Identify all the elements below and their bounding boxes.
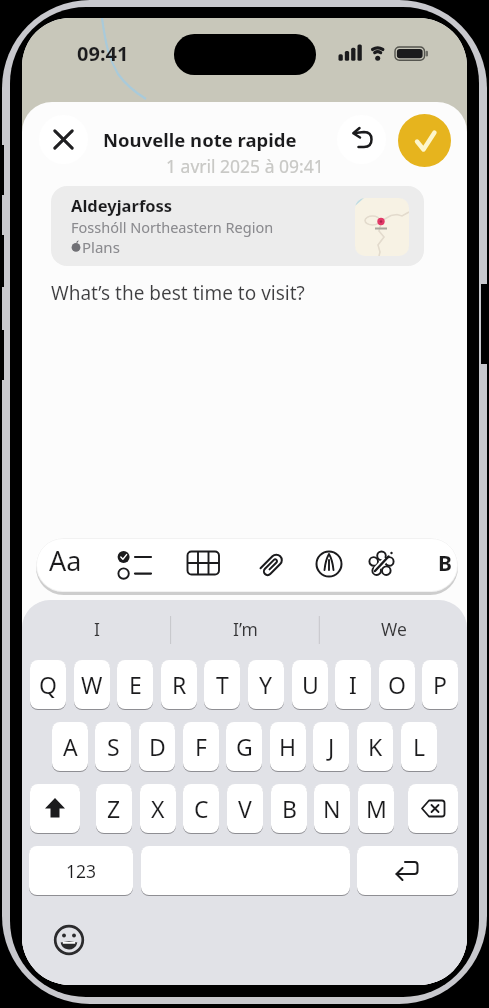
button[interactable]: 123 bbox=[29, 846, 133, 895]
staticText: What’s the best time to visit? bbox=[51, 280, 305, 306]
staticText: Fosshóll Northeastern Region bbox=[71, 217, 274, 237]
staticText: I bbox=[94, 617, 100, 641]
staticText: S bbox=[107, 731, 120, 762]
button[interactable] bbox=[337, 115, 386, 164]
staticText: B bbox=[438, 549, 452, 578]
staticText: V bbox=[238, 793, 252, 824]
button[interactable]: L bbox=[401, 722, 437, 771]
staticText: B bbox=[282, 793, 297, 824]
button[interactable]: I bbox=[335, 660, 371, 709]
staticText: C bbox=[194, 793, 209, 824]
staticText: O bbox=[388, 669, 406, 700]
staticText: Aldeyjarfoss bbox=[71, 194, 173, 216]
staticText: We bbox=[381, 617, 407, 641]
button[interactable] bbox=[408, 784, 458, 833]
button[interactable]: A bbox=[52, 722, 88, 771]
button[interactable]: T bbox=[204, 660, 240, 709]
button[interactable]: K bbox=[357, 722, 393, 771]
button[interactable] bbox=[30, 784, 80, 833]
button[interactable]: U bbox=[292, 660, 328, 709]
button[interactable]: P bbox=[422, 660, 458, 709]
staticText: K bbox=[368, 731, 383, 762]
button[interactable] bbox=[44, 545, 88, 585]
button[interactable]: Z bbox=[96, 784, 132, 833]
staticText: 123 bbox=[66, 859, 97, 883]
staticText: H bbox=[279, 731, 297, 762]
staticText: M bbox=[366, 793, 387, 824]
staticText: T bbox=[216, 669, 229, 700]
button[interactable]: B bbox=[271, 784, 307, 833]
button[interactable]: H bbox=[270, 722, 306, 771]
staticText: Y bbox=[259, 669, 273, 700]
staticText: J bbox=[328, 731, 335, 762]
staticText: Z bbox=[107, 793, 121, 824]
button[interactable] bbox=[141, 846, 350, 895]
button[interactable]: Y bbox=[248, 660, 284, 709]
staticText: A bbox=[63, 731, 78, 762]
button[interactable]: E bbox=[117, 660, 153, 709]
staticText: R bbox=[172, 669, 187, 700]
button[interactable] bbox=[114, 545, 158, 585]
button[interactable] bbox=[428, 545, 458, 585]
button[interactable]: G bbox=[226, 722, 262, 771]
button[interactable]: X bbox=[140, 784, 176, 833]
staticText: I’m bbox=[233, 617, 258, 641]
button[interactable] bbox=[50, 920, 90, 960]
button[interactable] bbox=[39, 115, 88, 164]
staticText: 09:41 bbox=[77, 40, 129, 67]
button[interactable]: C bbox=[183, 784, 219, 833]
staticText: X bbox=[151, 793, 165, 824]
staticText: Nouvelle note rapide bbox=[103, 127, 297, 152]
button[interactable]: I’m bbox=[171, 608, 320, 650]
staticText: G bbox=[236, 731, 253, 762]
button[interactable]: Q bbox=[30, 660, 66, 709]
staticText: N bbox=[323, 793, 341, 824]
button[interactable]: S bbox=[95, 722, 131, 771]
button[interactable]: O bbox=[379, 660, 415, 709]
button[interactable] bbox=[180, 545, 224, 585]
button[interactable]: Aldeyjarfoss bbox=[51, 186, 424, 266]
staticText: L bbox=[413, 731, 426, 762]
button[interactable] bbox=[359, 545, 403, 585]
staticText: W bbox=[81, 669, 103, 700]
button[interactable]: M bbox=[358, 784, 394, 833]
staticText: P bbox=[433, 669, 447, 700]
staticText: F bbox=[195, 731, 207, 762]
button[interactable]: V bbox=[227, 784, 263, 833]
staticText: Plans bbox=[82, 237, 120, 257]
button[interactable] bbox=[307, 545, 351, 585]
button[interactable] bbox=[398, 114, 451, 167]
button[interactable]: We bbox=[319, 608, 467, 650]
staticText: I bbox=[349, 669, 357, 700]
staticText: D bbox=[149, 731, 166, 762]
staticText: E bbox=[129, 669, 142, 700]
button[interactable]: F bbox=[183, 722, 219, 771]
button[interactable]: I bbox=[22, 608, 171, 650]
button[interactable]: W bbox=[74, 660, 110, 709]
button[interactable] bbox=[250, 545, 294, 585]
staticText: U bbox=[302, 669, 319, 700]
button[interactable]: R bbox=[161, 660, 197, 709]
staticText: Q bbox=[39, 669, 57, 700]
button[interactable]: N bbox=[314, 784, 350, 833]
staticText: Aa bbox=[49, 542, 82, 579]
staticText: 1 avril 2025 à 09:41 bbox=[166, 154, 324, 178]
button[interactable]: D bbox=[139, 722, 175, 771]
button[interactable]: J bbox=[313, 722, 349, 771]
button[interactable] bbox=[357, 846, 458, 895]
